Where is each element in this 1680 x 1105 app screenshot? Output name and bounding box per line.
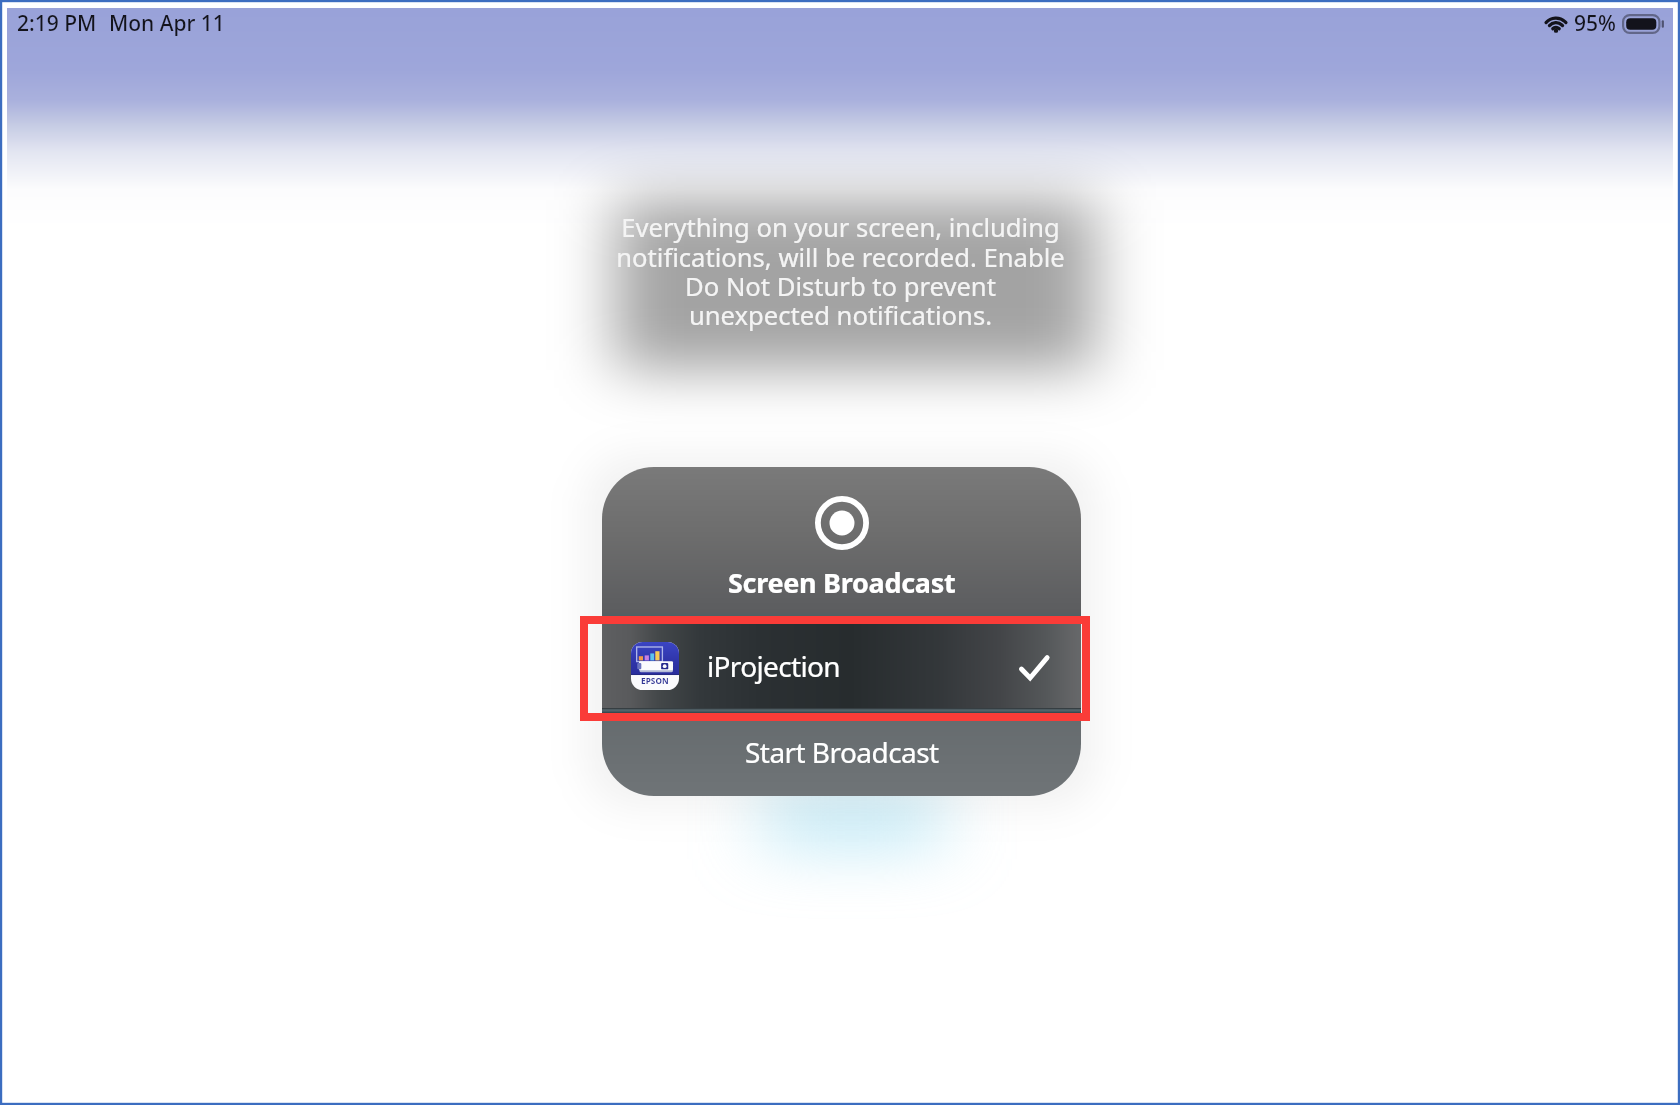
staticText: Start Broadcast <box>745 733 939 771</box>
staticText: Screen Broadcast <box>728 564 956 601</box>
staticText: 95% <box>1574 9 1616 38</box>
button[interactable]: EPSON <box>602 624 1081 708</box>
staticText: EPSON <box>641 675 669 686</box>
other: Battery 95 percent <box>1622 14 1666 34</box>
other: Record <box>815 496 869 550</box>
staticText: iProjection <box>707 647 840 685</box>
staticText: Everything on your screen, including not… <box>616 210 1065 333</box>
staticText: 2:19 PM <box>17 9 97 38</box>
other: Wi-Fi <box>1543 15 1569 33</box>
button[interactable]: Start Broadcast <box>602 713 1081 796</box>
staticText: Mon Apr 11 <box>109 9 225 38</box>
other: Selected <box>1019 654 1049 684</box>
